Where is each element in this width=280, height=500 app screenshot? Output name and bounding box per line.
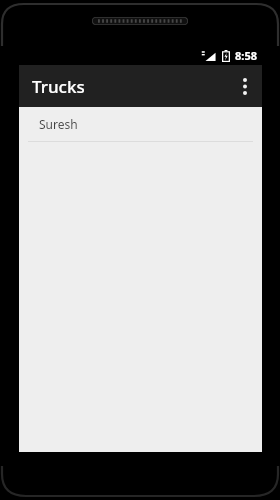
staticText: Trucks [32,75,85,98]
staticText: 8:58 [235,48,257,63]
button[interactable]: Suresh [19,107,262,141]
button[interactable]: More options [228,65,262,107]
staticText: Suresh [39,116,78,132]
